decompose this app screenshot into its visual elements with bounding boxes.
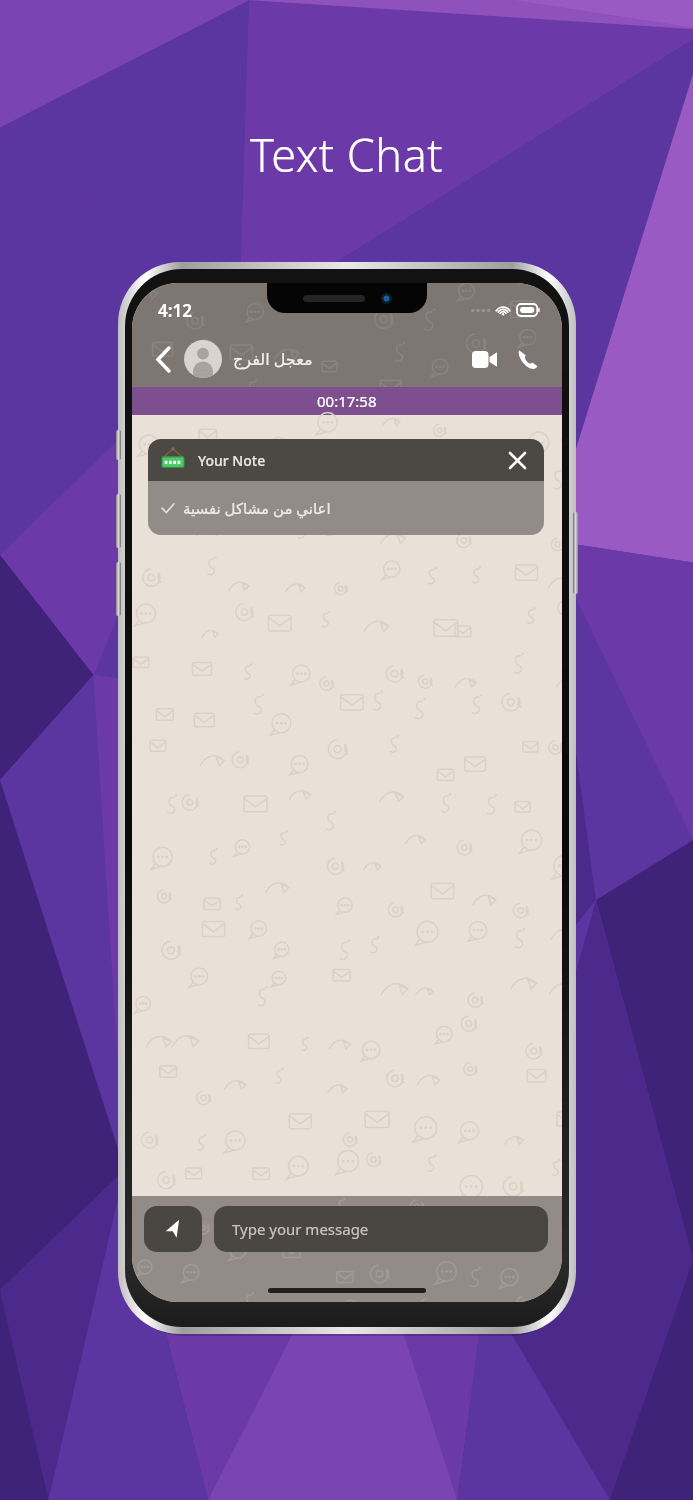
staticText: اعاني من مشاكل نفسية (183, 498, 331, 518)
staticText: Your Note (198, 451, 266, 470)
staticText: Type your message (232, 1219, 369, 1239)
button[interactable]: Send (144, 1206, 202, 1252)
button[interactable]: Close note (502, 445, 532, 475)
button[interactable]: Voice call (508, 339, 548, 379)
button[interactable]: اعاني من مشاكل نفسية (148, 481, 544, 535)
button[interactable]: Contact avatar (184, 340, 222, 378)
staticText: 4:12 (158, 299, 192, 322)
staticText: 00:17:58 (317, 391, 377, 411)
button[interactable]: Type your message (214, 1206, 548, 1252)
staticText: معجل الفرج (233, 348, 313, 370)
button[interactable]: Video call (464, 339, 504, 379)
button[interactable]: Back (144, 340, 182, 378)
staticText: Text Chat (250, 124, 444, 185)
button[interactable]: 00:17:58 (132, 387, 562, 415)
